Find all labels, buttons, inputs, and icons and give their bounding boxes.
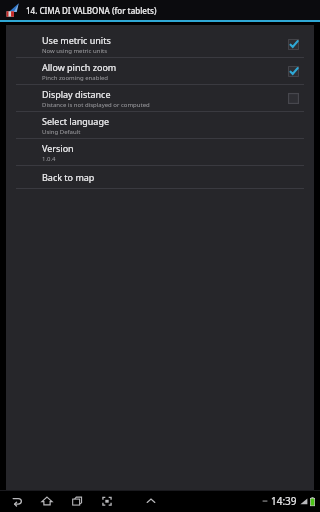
staticText: Now using metric units xyxy=(42,47,108,55)
button[interactable]: Version xyxy=(6,139,314,165)
button[interactable]: Select language xyxy=(6,112,314,138)
staticText: Allow pinch zoom xyxy=(42,61,117,73)
button[interactable]: Screenshot xyxy=(98,491,116,511)
other: App icon xyxy=(4,2,20,18)
button[interactable]: Show notifications xyxy=(142,491,160,511)
staticText: Pinch zooming enabled xyxy=(42,74,109,82)
button[interactable]: Allow pinch zoom xyxy=(6,58,314,84)
staticText: Back to map xyxy=(42,171,95,183)
button[interactable]: Unchecked xyxy=(287,92,300,105)
button[interactable]: Checked xyxy=(287,65,300,78)
staticText: Distance is not displayed or computed xyxy=(42,101,150,109)
staticText: Select language xyxy=(42,115,110,127)
staticText: Version xyxy=(42,142,74,154)
staticText: Display distance xyxy=(42,88,111,100)
staticText: Using Default xyxy=(42,128,81,136)
button[interactable]: Back xyxy=(8,491,26,511)
button[interactable]: Display distance xyxy=(6,85,314,111)
button[interactable]: Back to map xyxy=(6,166,314,188)
staticText: 14:39 xyxy=(271,494,297,508)
staticText: 14. CIMA DI VALBONA (for tablets) xyxy=(26,5,157,16)
button[interactable]: Recent apps xyxy=(68,491,86,511)
button[interactable]: App icon xyxy=(0,0,320,20)
button[interactable]: Use metric units xyxy=(6,31,314,57)
staticText: 1.0.4 xyxy=(42,155,56,163)
staticText: Use metric units xyxy=(42,34,111,46)
button[interactable]: Home xyxy=(38,491,56,511)
button[interactable]: Checked xyxy=(287,38,300,51)
